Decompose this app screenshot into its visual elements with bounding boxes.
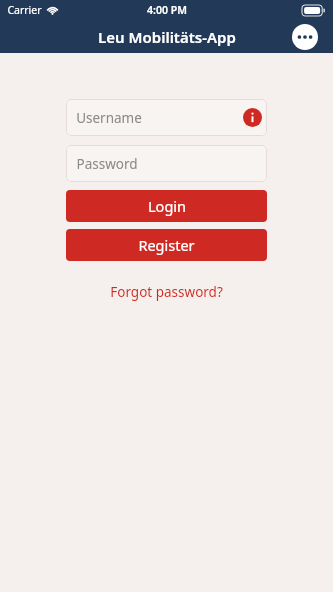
button[interactable]: Register (66, 229, 267, 261)
staticText: Carrier (7, 3, 42, 17)
staticText: Forgot password? (110, 283, 223, 301)
button[interactable]: Username (66, 99, 267, 136)
button[interactable]: More options (292, 24, 318, 50)
staticText: Leu Mobilitäts-App (98, 27, 236, 47)
staticText: Password (76, 155, 138, 173)
staticText: Username (76, 109, 142, 127)
staticText: Register (138, 235, 195, 255)
button[interactable]: Login (66, 190, 267, 222)
staticText: 4:00 PM (147, 3, 187, 17)
button[interactable]: Forgot password? (66, 283, 267, 301)
staticText: Login (148, 196, 186, 216)
button[interactable]: Password (66, 145, 267, 182)
other: Info (243, 108, 262, 127)
